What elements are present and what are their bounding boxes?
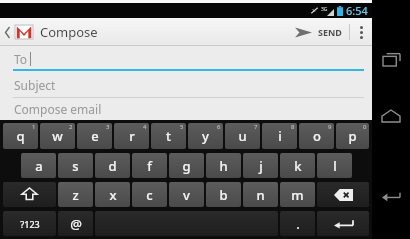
staticText: 0 xyxy=(363,123,367,131)
staticText: t xyxy=(166,127,171,145)
staticText: Compose email xyxy=(14,101,102,117)
staticText: Subject xyxy=(14,77,56,93)
staticText: f xyxy=(147,157,152,175)
button[interactable]: s xyxy=(58,153,93,178)
staticText: n xyxy=(256,186,265,204)
button[interactable]: Home xyxy=(376,101,406,131)
staticText: 3G xyxy=(321,6,328,13)
staticText: o xyxy=(313,127,321,145)
button[interactable]: SEND xyxy=(288,18,349,46)
button[interactable]: b xyxy=(206,182,241,207)
button[interactable]: Compose xyxy=(0,18,104,46)
staticText: s xyxy=(72,157,79,175)
staticText: b xyxy=(219,186,228,204)
button[interactable]: q xyxy=(3,123,38,149)
button[interactable]: l xyxy=(317,153,352,178)
staticText: 4 xyxy=(143,123,147,131)
staticText: m xyxy=(291,186,304,204)
staticText: 8 xyxy=(291,123,295,131)
staticText: i xyxy=(278,127,282,145)
staticText: d xyxy=(108,157,117,175)
button[interactable]: Key xyxy=(95,211,278,236)
button[interactable]: i xyxy=(262,123,297,149)
button[interactable]: r xyxy=(114,123,149,149)
staticText: . xyxy=(296,215,300,233)
staticText: Compose xyxy=(40,23,98,41)
staticText: To xyxy=(14,51,28,67)
staticText: l xyxy=(333,157,337,175)
button[interactable]: Compose email xyxy=(0,98,372,120)
button[interactable]: @ xyxy=(58,211,93,236)
staticText: y xyxy=(202,127,209,145)
button[interactable]: d xyxy=(95,153,130,178)
button[interactable]: ?123 xyxy=(3,211,56,236)
button[interactable]: . xyxy=(280,211,315,236)
button[interactable]: f xyxy=(132,153,167,178)
button[interactable]: To xyxy=(0,46,372,71)
staticText: g xyxy=(182,157,191,175)
staticText: c xyxy=(146,186,153,204)
staticText: 6:54 xyxy=(346,3,368,18)
button[interactable]: z xyxy=(58,182,93,207)
staticText: e xyxy=(91,127,99,145)
button[interactable]: Back xyxy=(376,183,406,213)
button[interactable]: x xyxy=(95,182,130,207)
staticText: 1 xyxy=(32,123,36,131)
button[interactable]: Key xyxy=(3,182,56,207)
staticText: w xyxy=(52,127,63,145)
button[interactable]: Recent apps xyxy=(376,44,406,74)
staticText: @ xyxy=(70,215,82,233)
button[interactable]: h xyxy=(206,153,241,178)
staticText: a xyxy=(35,157,43,175)
staticText: u xyxy=(238,127,247,145)
button[interactable]: Key xyxy=(317,182,369,207)
button[interactable]: Key xyxy=(317,211,369,236)
button[interactable]: c xyxy=(132,182,167,207)
staticText: q xyxy=(16,127,25,145)
button[interactable]: u xyxy=(225,123,260,149)
staticText: ?123 xyxy=(20,218,40,230)
staticText: 5 xyxy=(180,123,184,131)
staticText: 3 xyxy=(106,123,110,131)
button[interactable]: v xyxy=(169,182,204,207)
button[interactable]: j xyxy=(243,153,278,178)
staticText: v xyxy=(183,186,190,204)
button[interactable]: More options xyxy=(350,18,372,46)
staticText: r xyxy=(129,127,135,145)
button[interactable]: n xyxy=(243,182,278,207)
button[interactable]: k xyxy=(280,153,315,178)
button[interactable]: p xyxy=(336,123,369,149)
staticText: h xyxy=(219,157,228,175)
staticText: z xyxy=(72,186,79,204)
button[interactable]: w xyxy=(40,123,75,149)
button[interactable]: o xyxy=(299,123,334,149)
button[interactable]: t xyxy=(151,123,186,149)
staticText: 7 xyxy=(254,123,258,131)
staticText: 6 xyxy=(217,123,221,131)
button[interactable]: a xyxy=(21,153,56,178)
staticText: p xyxy=(348,127,357,145)
staticText: k xyxy=(294,157,302,175)
button[interactable]: e xyxy=(77,123,112,149)
staticText: 2 xyxy=(69,123,73,131)
button[interactable]: y xyxy=(188,123,223,149)
staticText: j xyxy=(259,157,263,175)
staticText: x xyxy=(109,186,117,204)
button[interactable]: Subject xyxy=(0,71,372,98)
button[interactable]: m xyxy=(280,182,315,207)
staticText: 9 xyxy=(328,123,332,131)
staticText: SEND xyxy=(318,26,342,38)
button[interactable]: g xyxy=(169,153,204,178)
